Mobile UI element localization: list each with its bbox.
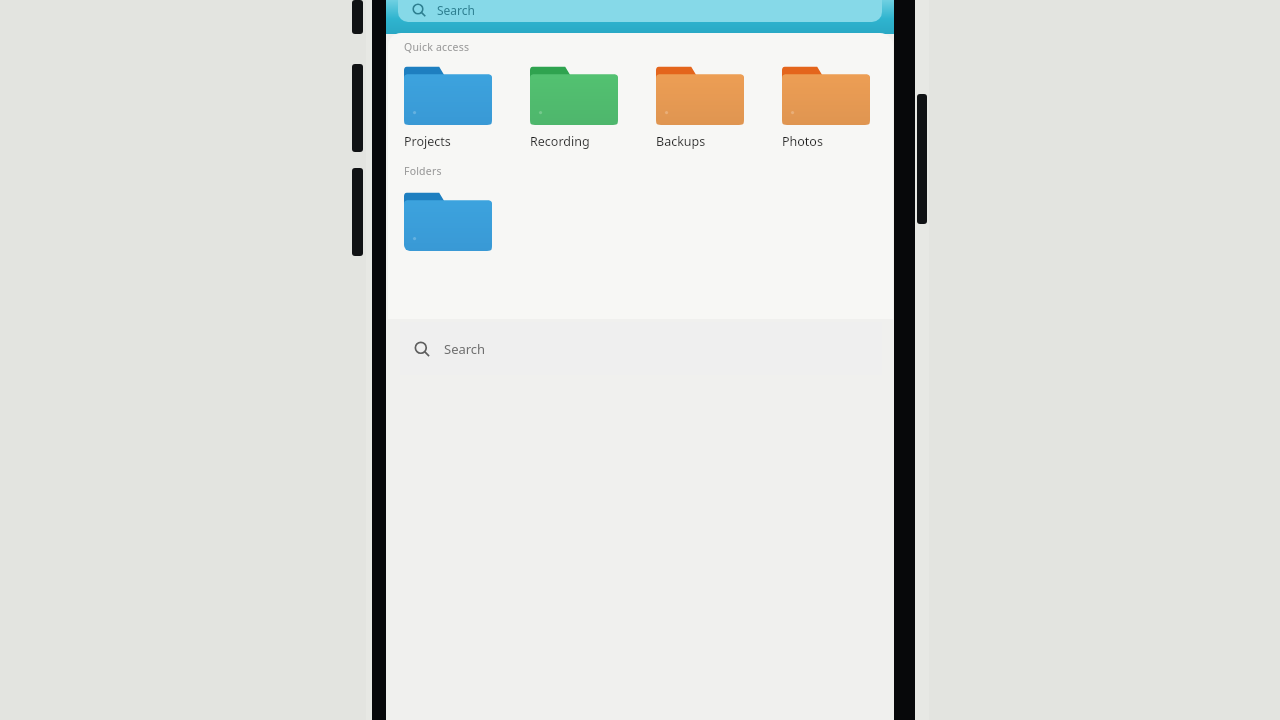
staticText: Quick access (404, 40, 470, 54)
staticText: Search (437, 2, 475, 18)
button[interactable]: Search (400, 322, 882, 375)
staticText: Projects (404, 133, 451, 150)
button[interactable]: Search (398, 0, 882, 22)
button[interactable]: Backups (656, 63, 782, 150)
staticText: Recording (530, 133, 590, 150)
staticText: Backups (656, 133, 706, 150)
staticText: Folders (404, 164, 442, 178)
staticText: Search (444, 340, 486, 358)
button[interactable]: Projects (404, 63, 530, 150)
button[interactable]: Recording (530, 63, 656, 150)
staticText: Photos (782, 133, 823, 150)
button[interactable]: Photos (782, 63, 885, 150)
button[interactable]: Folder (404, 189, 496, 251)
